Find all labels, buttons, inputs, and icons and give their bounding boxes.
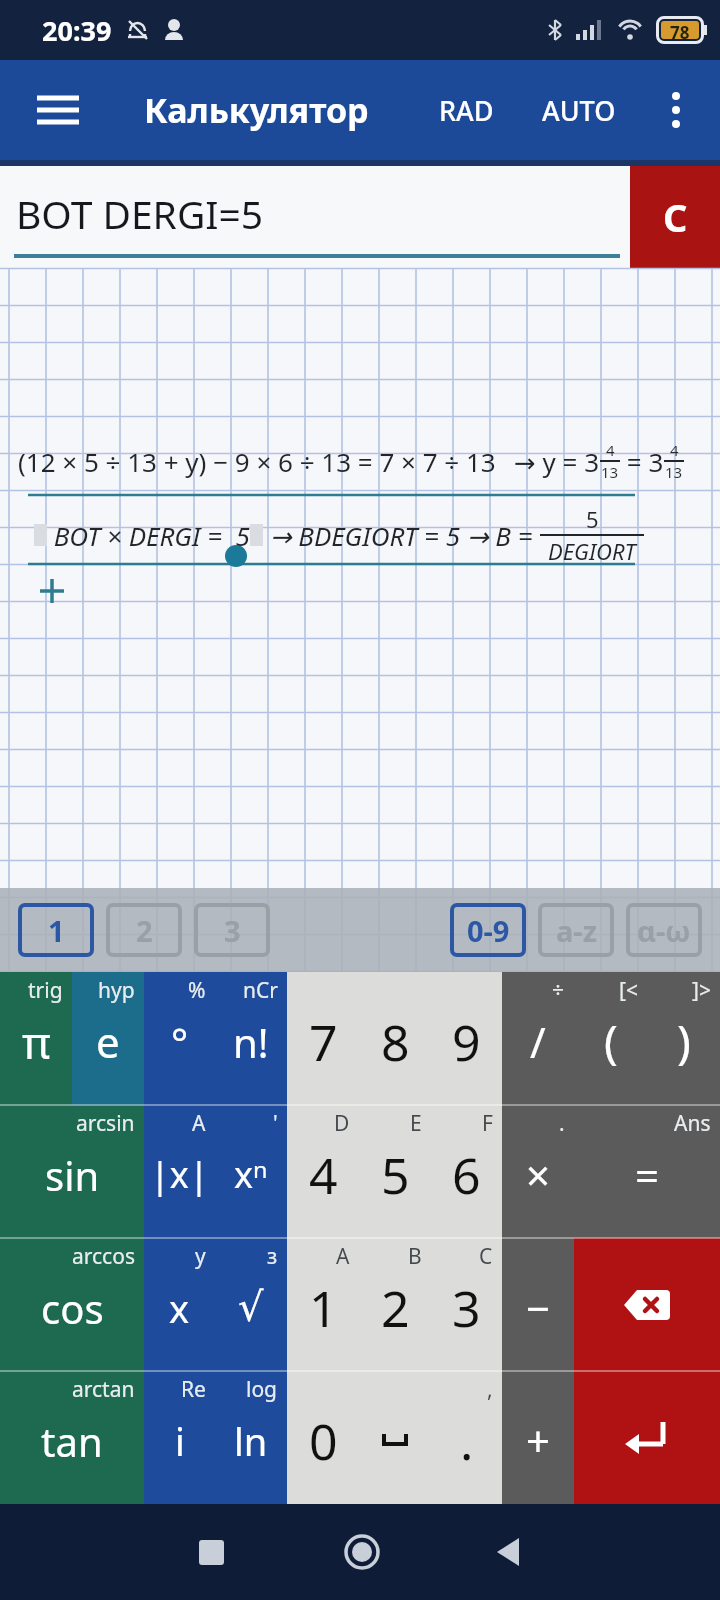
staticText: 0 (309, 1407, 338, 1475)
staticText: log (246, 1375, 278, 1404)
button[interactable] (20, 60, 96, 160)
staticText: 4 (309, 1141, 338, 1209)
staticText: e (96, 1013, 120, 1070)
button[interactable] (359, 1371, 431, 1504)
staticText: n! (233, 1015, 269, 1069)
staticText: , (487, 1375, 493, 1404)
staticText: √ (238, 1284, 264, 1331)
staticText: × (526, 1146, 551, 1203)
button[interactable] (646, 60, 706, 160)
button[interactable]: A (287, 1238, 359, 1371)
button[interactable] (182, 1523, 240, 1581)
staticText: cos (41, 1281, 104, 1335)
staticText: D (334, 1109, 350, 1138)
button[interactable]: α-ω (626, 903, 702, 957)
staticText: E (410, 1109, 422, 1138)
button[interactable]: y (144, 1238, 215, 1371)
staticText: Ans (674, 1109, 711, 1138)
staticText: A (336, 1242, 350, 1271)
button[interactable]: a-z (538, 903, 614, 957)
button[interactable]: arccos (0, 1238, 144, 1371)
staticText: ( (604, 1010, 618, 1073)
button[interactable]: nCr (215, 972, 287, 1105)
staticText: ]> (692, 976, 711, 1005)
staticText: ÷ (552, 976, 565, 1005)
staticText: BOT DERGI=5 (16, 187, 264, 240)
button[interactable]: % (144, 972, 215, 1105)
button[interactable]: F (431, 1105, 502, 1238)
staticText: Re (181, 1375, 206, 1404)
staticText: 3 (452, 1274, 481, 1342)
staticText: [< (619, 976, 638, 1005)
staticText: y (195, 1242, 206, 1271)
staticText: arccos (72, 1242, 135, 1271)
button[interactable]: arcsin (0, 1105, 144, 1238)
staticText: DEGIORT (548, 536, 636, 566)
button[interactable]: RAD (439, 60, 494, 160)
button[interactable]: 0-9 (450, 903, 526, 957)
staticText: BOT × DERGI = 5 (47, 518, 250, 553)
button[interactable]: A (144, 1105, 215, 1238)
button[interactable]: ]> (647, 972, 720, 1105)
button[interactable]: arctan (0, 1371, 144, 1504)
staticText: ' (273, 1109, 278, 1138)
button[interactable]: ' (215, 1105, 287, 1238)
button[interactable] (479, 1523, 537, 1581)
staticText: → y = 3 (514, 444, 600, 479)
button[interactable]: B (359, 1238, 431, 1371)
button[interactable]: ÷ (502, 972, 574, 1105)
button[interactable]: 8 (359, 972, 431, 1105)
staticText: ° (171, 1015, 189, 1069)
staticText: . (460, 1407, 474, 1475)
button[interactable]: + (502, 1371, 574, 1504)
button[interactable]: . (502, 1105, 574, 1238)
button[interactable]: C (630, 166, 720, 268)
staticText: arcsin (76, 1109, 135, 1138)
button[interactable]: 2 (106, 903, 182, 957)
staticText: RAD (439, 92, 494, 129)
staticText: + (526, 1412, 551, 1469)
button[interactable]: 7 (287, 972, 359, 1105)
button[interactable]: trig (0, 972, 72, 1105)
button[interactable] (333, 1523, 391, 1581)
button[interactable]: hyp (72, 972, 144, 1105)
button[interactable]: з (215, 1238, 287, 1371)
button[interactable]: [< (574, 972, 647, 1105)
staticText: 1 (309, 1274, 338, 1342)
staticText: A (192, 1109, 206, 1138)
staticText: 4 (606, 440, 615, 460)
button[interactable]: 9 (431, 972, 502, 1105)
staticText: 2 (381, 1274, 410, 1342)
button[interactable]: , (431, 1371, 502, 1504)
staticText: α-ω (637, 911, 691, 950)
staticText: 4 (670, 440, 679, 460)
button[interactable] (574, 1371, 720, 1504)
button[interactable]: Re (144, 1371, 215, 1504)
staticText: Калькулятор (144, 87, 369, 133)
staticText: 8 (381, 1008, 410, 1076)
button[interactable]: 0 (287, 1371, 359, 1504)
staticText: → BDEGIORT = 5 → B = (263, 518, 540, 553)
staticText: ) (677, 1010, 691, 1073)
button[interactable]: 1 (18, 903, 94, 957)
staticText: . (559, 1109, 565, 1138)
staticText: 0-9 (467, 911, 510, 950)
button[interactable] (574, 1238, 720, 1371)
staticText: 1 (48, 911, 65, 950)
staticText: C (663, 191, 688, 243)
staticText: (12 × 5 ÷ 13 + y) − 9 × 6 ÷ 13 = 7 × 7 ÷… (18, 444, 496, 479)
button[interactable]: Ans (574, 1105, 720, 1238)
staticText: tan (41, 1414, 103, 1468)
staticText: F (482, 1109, 493, 1138)
button[interactable]: D (287, 1105, 359, 1238)
staticText: 5 (381, 1141, 410, 1209)
button[interactable]: log (215, 1371, 287, 1504)
button[interactable]: AUTO (542, 60, 616, 160)
staticText: 3 (224, 911, 241, 950)
staticText: 5 (586, 504, 599, 534)
staticText: nCr (243, 976, 278, 1005)
button[interactable]: E (359, 1105, 431, 1238)
button[interactable]: − (502, 1238, 574, 1371)
button[interactable]: C (431, 1238, 502, 1371)
button[interactable]: 3 (194, 903, 270, 957)
